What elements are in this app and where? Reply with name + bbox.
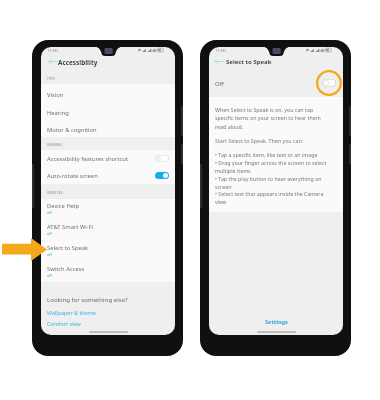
- button[interactable]: [41, 86, 175, 103]
- button[interactable]: [41, 219, 175, 240]
- staticText: SERVICES: [47, 191, 63, 195]
- button[interactable]: [41, 261, 175, 282]
- staticText: Device Help: [47, 202, 80, 210]
- staticText: off: [47, 273, 52, 278]
- button[interactable]: Select to Speak switch, off: [322, 79, 336, 87]
- staticText: specific items on your screen to hear th…: [215, 114, 321, 121]
- staticText: • Tap a specific item, like text or an i…: [215, 151, 318, 158]
- staticText: Accessibility: [58, 58, 98, 67]
- staticText: Off: [215, 80, 224, 88]
- staticText: Start Select to Speak. Then you can:: [215, 137, 304, 144]
- button[interactable]: Navigate up: [48, 58, 59, 65]
- button[interactable]: Accessibility features shortcut, off: [155, 155, 169, 162]
- staticText: • Tap the play button to hear everything…: [215, 175, 322, 182]
- button[interactable]: [41, 104, 175, 121]
- staticText: Switch Access: [47, 265, 85, 273]
- staticText: 11:00: [47, 48, 58, 54]
- staticText: Motor & cognition: [47, 126, 97, 134]
- staticText: GENERAL: [47, 143, 63, 147]
- staticText: Hearing: [47, 109, 69, 117]
- staticText: screen: [215, 183, 232, 190]
- button[interactable]: [41, 240, 175, 261]
- button[interactable]: [41, 198, 175, 219]
- button[interactable]: [41, 121, 175, 138]
- staticText: AT&T Smart Wi-Fi: [47, 223, 94, 231]
- staticText: • Select text that appears inside the Ca…: [215, 190, 324, 197]
- button[interactable]: [209, 75, 343, 95]
- staticText: Select to Speak: [47, 244, 89, 252]
- staticText: multiple items: [215, 167, 251, 174]
- staticText: off: [47, 210, 52, 215]
- staticText: Looking for something else?: [47, 295, 128, 303]
- staticText: Settings: [265, 318, 288, 326]
- staticText: off: [47, 231, 52, 236]
- button[interactable]: Auto-rotate screen, on: [155, 172, 169, 179]
- button[interactable]: Navigate up: [214, 58, 225, 65]
- staticText: 11:00: [215, 48, 226, 54]
- button[interactable]: [41, 167, 175, 184]
- staticText: Vision: [47, 91, 64, 99]
- staticText: Select to Speak: [226, 58, 272, 66]
- staticText: Accessibility features shortcut: [47, 155, 129, 163]
- button[interactable]: [258, 316, 302, 329]
- staticText: Wallpaper & theme: [47, 309, 96, 316]
- staticText: Auto-rotate screen: [47, 172, 98, 180]
- staticText: off: [47, 252, 52, 257]
- button[interactable]: Highlighted Select to Speak switch: [316, 70, 342, 96]
- staticText: view: [215, 198, 227, 205]
- button[interactable]: [41, 150, 175, 167]
- staticText: • Drag your finger across the screen to …: [215, 159, 327, 166]
- staticText: TYPE: [47, 77, 56, 81]
- staticText: When Select to Speak is on, you can tap: [215, 106, 314, 113]
- staticText: read aloud.: [215, 123, 244, 130]
- staticText: Comfort view: [47, 320, 81, 327]
